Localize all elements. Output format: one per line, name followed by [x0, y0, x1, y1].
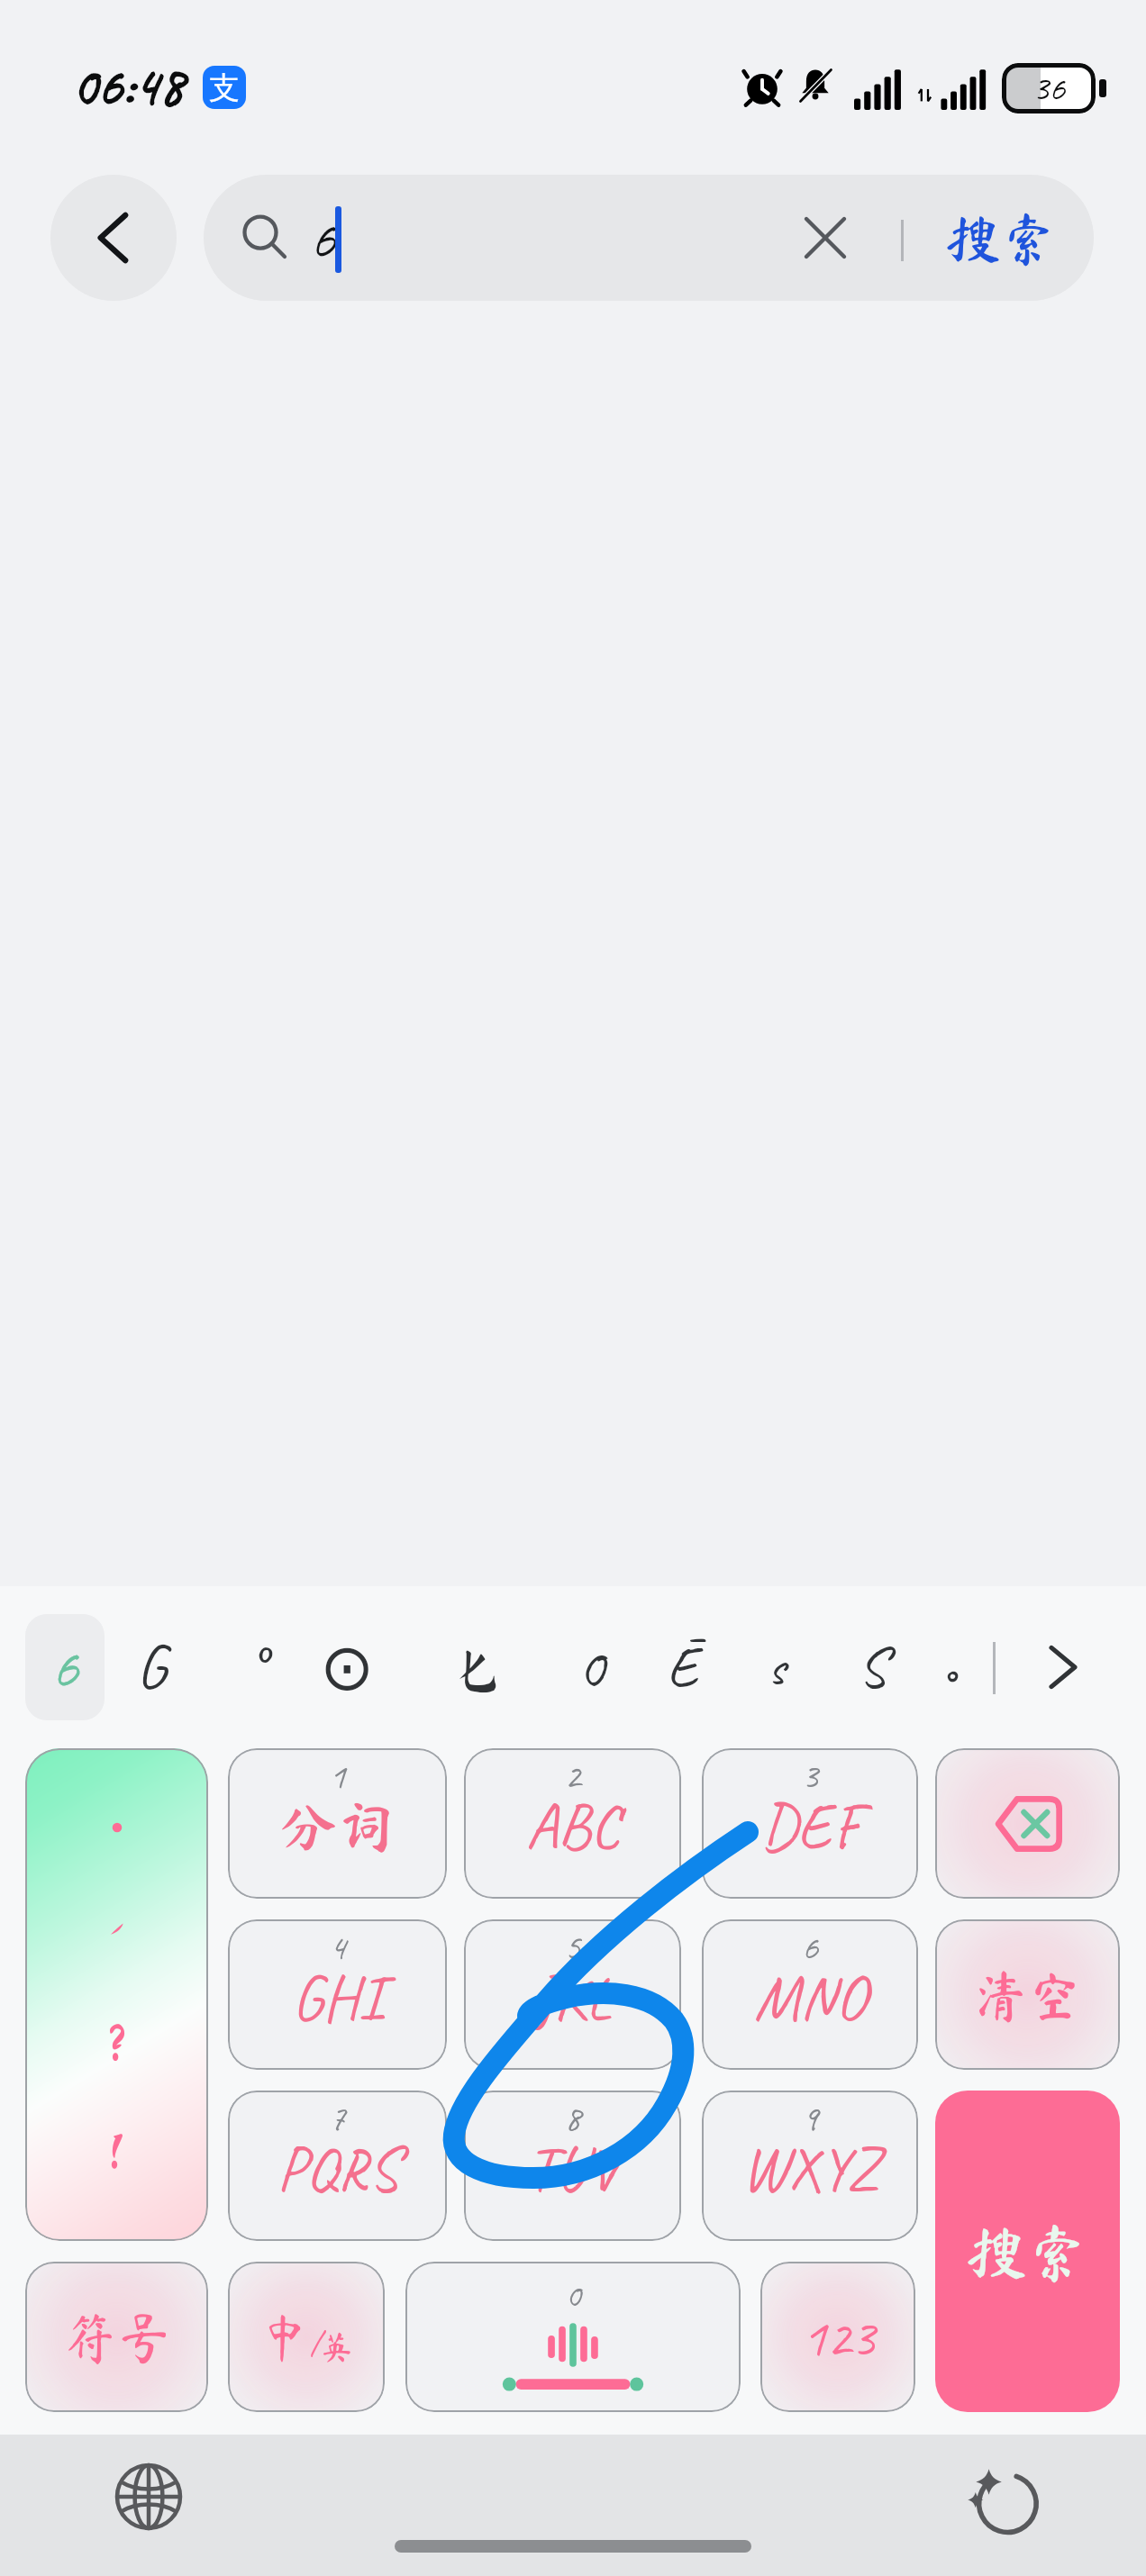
staticText: 123: [802, 2303, 875, 2372]
button[interactable]: 搜索: [933, 193, 1069, 283]
button[interactable]: 3: [702, 1748, 918, 1899]
button[interactable]: Switch input method: [960, 2457, 1040, 2536]
staticText: 06:48: [72, 50, 184, 121]
staticText: WXYZ: [702, 2129, 918, 2209]
button[interactable]: 9: [702, 2091, 918, 2241]
staticText: ！: [92, 2127, 142, 2177]
button[interactable]: 2: [464, 1748, 681, 1899]
staticText: 9: [702, 2096, 918, 2141]
staticText: 支: [209, 68, 240, 107]
staticText: 搜索: [945, 210, 1058, 266]
staticText: TUV: [464, 2129, 681, 2209]
button[interactable]: 。: [931, 1613, 996, 1721]
button[interactable]: G: [119, 1613, 184, 1721]
staticText: /: [310, 2322, 321, 2363]
staticText: 清空: [974, 1968, 1082, 2022]
staticText: s: [768, 1636, 786, 1700]
staticText: 7: [228, 2096, 447, 2141]
button[interactable]: More candidates: [1023, 1628, 1103, 1707]
staticText: 搜索: [966, 2221, 1089, 2282]
staticText: 5: [464, 1925, 681, 1970]
staticText: 1: [228, 1754, 447, 1799]
button[interactable]: 符号: [25, 2262, 208, 2412]
button[interactable]: Backspace: [935, 1748, 1120, 1899]
button[interactable]: 搜索: [935, 2091, 1120, 2412]
staticText: 6: [702, 1925, 918, 1970]
staticText: 6: [310, 204, 335, 274]
button[interactable]: 清空: [935, 1919, 1120, 2070]
button[interactable]: °: [223, 1613, 288, 1721]
button[interactable]: S: [840, 1613, 905, 1721]
button[interactable]: Back: [50, 175, 177, 301]
staticText: 英: [321, 2330, 354, 2363]
button[interactable]: Clear: [787, 200, 863, 276]
staticText: 0: [578, 1630, 605, 1705]
staticText: 3: [702, 1754, 918, 1799]
staticText: ABC: [464, 1787, 681, 1866]
staticText: °: [249, 1636, 263, 1700]
button[interactable]: 123: [760, 2262, 915, 2412]
button[interactable]: 7: [228, 2091, 447, 2241]
button[interactable]: ？: [25, 1748, 208, 2241]
button[interactable]: 中: [228, 2262, 385, 2412]
staticText: 中: [259, 2312, 310, 2363]
staticText: 0: [405, 2274, 741, 2317]
button[interactable]: 4: [228, 1919, 447, 2070]
staticText: S: [858, 1631, 887, 1704]
staticText: 36: [1032, 66, 1065, 111]
staticText: 2: [464, 1754, 681, 1799]
staticText: JKL: [464, 1958, 681, 2037]
staticText: 4: [228, 1925, 447, 1970]
button[interactable]: 5: [464, 1919, 681, 2070]
button[interactable]: 6: [702, 1919, 918, 2070]
staticText: 。: [942, 1646, 984, 1688]
staticText: ？: [92, 2018, 142, 2069]
staticText: MNO: [702, 1958, 918, 2037]
staticText: PQRS: [228, 2129, 447, 2209]
staticText: ⊙: [320, 1629, 375, 1705]
button[interactable]: 6: [25, 1614, 105, 1720]
staticText: 6: [51, 1630, 78, 1705]
button[interactable]: 0: [559, 1613, 623, 1721]
staticText: GHI: [228, 1958, 447, 2037]
button[interactable]: 6: [204, 175, 1094, 301]
staticText: G: [136, 1628, 167, 1706]
staticText: 符号: [63, 2310, 171, 2364]
button[interactable]: Change language: [109, 2457, 188, 2536]
button[interactable]: 1: [228, 1748, 447, 1899]
button[interactable]: 匕: [446, 1613, 511, 1721]
button[interactable]: s: [744, 1613, 809, 1721]
staticText: 匕: [450, 1638, 507, 1696]
button[interactable]: Ē: [650, 1613, 715, 1721]
staticText: 8: [464, 2096, 681, 2141]
staticText: Ē: [667, 1631, 699, 1704]
staticText: DEF: [702, 1787, 918, 1866]
button[interactable]: ⊙: [314, 1613, 379, 1721]
staticText: 分词: [228, 1798, 447, 1855]
button[interactable]: 8: [464, 2091, 681, 2241]
button[interactable]: Space: [405, 2262, 741, 2412]
